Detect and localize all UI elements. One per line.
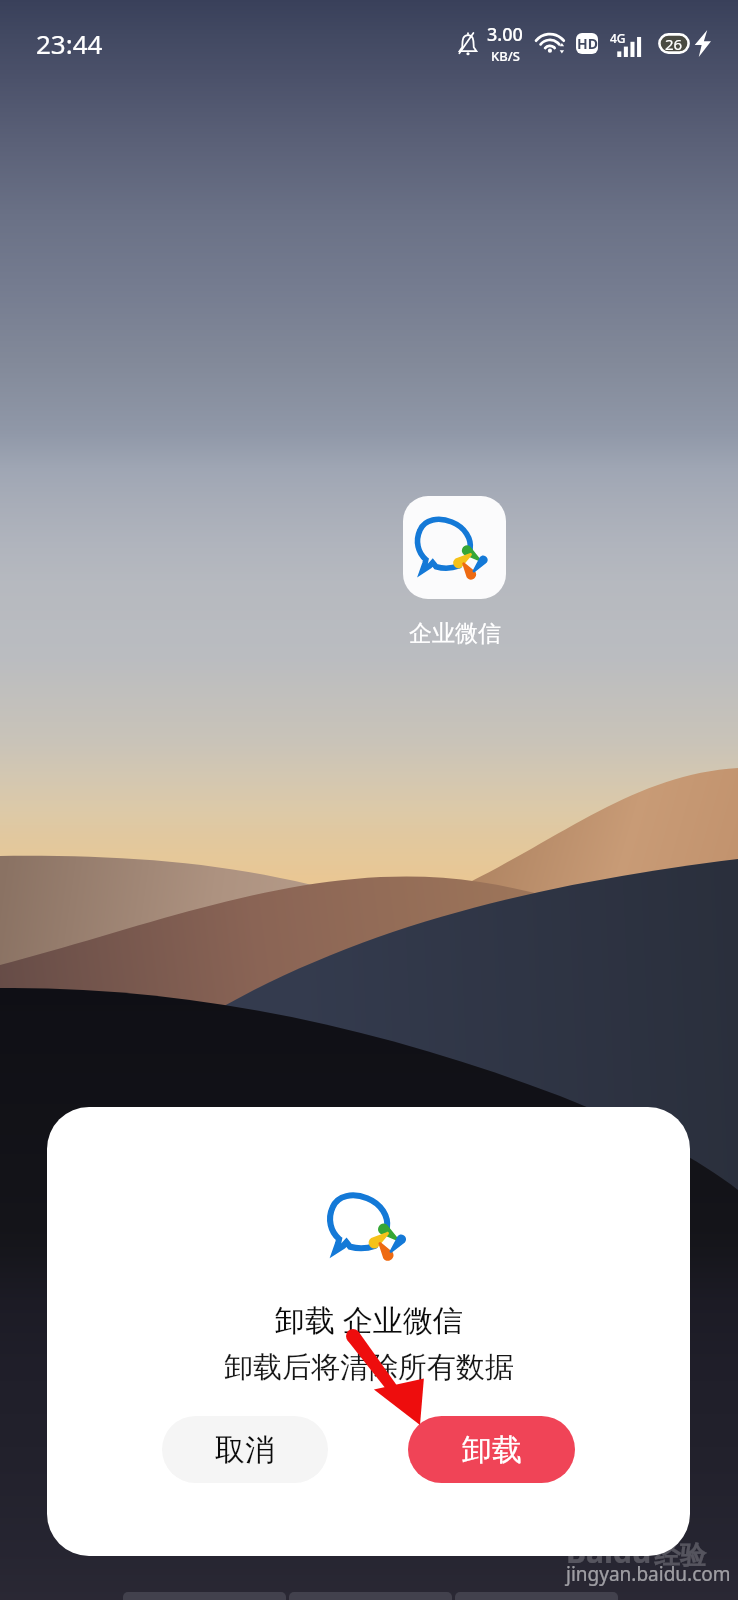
staticText: 卸载 企业微信	[275, 1299, 463, 1340]
staticText: HD	[577, 34, 598, 53]
staticText: 3.00	[487, 22, 523, 47]
staticText: KB/S	[491, 47, 520, 65]
staticText: 23:44	[36, 26, 103, 61]
staticText: Baidu	[566, 1531, 652, 1572]
staticText: 26	[665, 34, 683, 54]
staticText: 卸载	[462, 1431, 522, 1469]
button[interactable]: 取消	[162, 1416, 328, 1483]
button[interactable]: 卸载	[408, 1416, 575, 1483]
staticText: 卸载后将清除所有数据	[224, 1349, 514, 1386]
staticText: 经验	[654, 1539, 706, 1572]
staticText: 取消	[215, 1431, 275, 1469]
staticText: 企业微信	[409, 619, 501, 648]
staticText: 4G	[610, 30, 626, 46]
staticText: jingyan.baidu.com	[566, 1561, 731, 1587]
button[interactable]: 企业微信	[403, 496, 506, 599]
